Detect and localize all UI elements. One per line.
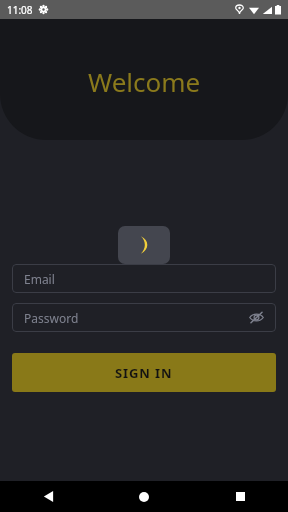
button[interactable]: SIGN IN — [12, 353, 276, 392]
staticText: Welcome — [88, 64, 201, 99]
staticText: SIGN IN — [115, 364, 173, 382]
button[interactable]: Back — [26, 481, 70, 512]
button[interactable]: App logo — [118, 226, 170, 264]
button[interactable]: Recent apps — [218, 481, 262, 512]
button[interactable]: Toggle password visibility — [248, 309, 265, 326]
staticText: 11:08 — [7, 3, 33, 17]
staticText: Email — [24, 271, 55, 287]
button[interactable]: Password — [12, 303, 276, 332]
button[interactable]: Email — [12, 264, 276, 293]
staticText: Password — [24, 310, 79, 326]
button[interactable]: Home — [122, 481, 166, 512]
